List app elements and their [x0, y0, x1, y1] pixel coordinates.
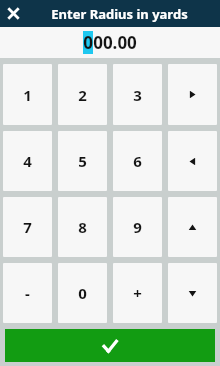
button[interactable]: 4 — [3, 131, 52, 191]
button[interactable]: Move cursor left — [168, 131, 217, 191]
staticText: 4 — [23, 151, 32, 171]
staticText: 2 — [78, 85, 87, 105]
button[interactable]: 6 — [113, 131, 162, 191]
button[interactable]: Confirm — [5, 329, 215, 362]
staticText: 5 — [78, 151, 87, 171]
button[interactable]: Move cursor right — [168, 64, 217, 125]
button[interactable]: 3 — [113, 64, 162, 125]
staticText: 00.00 — [93, 31, 137, 54]
button[interactable]: - — [3, 263, 52, 323]
staticText: Enter Radius in yards — [51, 5, 188, 23]
staticText: 8 — [78, 217, 87, 237]
staticText: 0 — [83, 31, 93, 54]
button[interactable]: Decrease — [168, 263, 217, 323]
staticText: 3 — [133, 85, 142, 105]
staticText: - — [25, 283, 30, 303]
button[interactable]: Close — [0, 0, 27, 27]
staticText: 0 — [78, 283, 87, 303]
button[interactable]: 1 — [3, 64, 52, 125]
button[interactable]: 5 — [58, 131, 107, 191]
staticText: 9 — [133, 217, 142, 237]
button[interactable]: + — [113, 263, 162, 323]
button[interactable]: 9 — [113, 197, 162, 257]
staticText: 1 — [23, 85, 32, 105]
button[interactable]: Increase — [168, 197, 217, 257]
staticText: 6 — [133, 151, 142, 171]
button[interactable]: 8 — [58, 197, 107, 257]
button[interactable]: 0 — [58, 263, 107, 323]
staticText: 7 — [23, 217, 32, 237]
staticText: + — [133, 283, 142, 303]
button[interactable]: 2 — [58, 64, 107, 125]
button[interactable]: 7 — [3, 197, 52, 257]
